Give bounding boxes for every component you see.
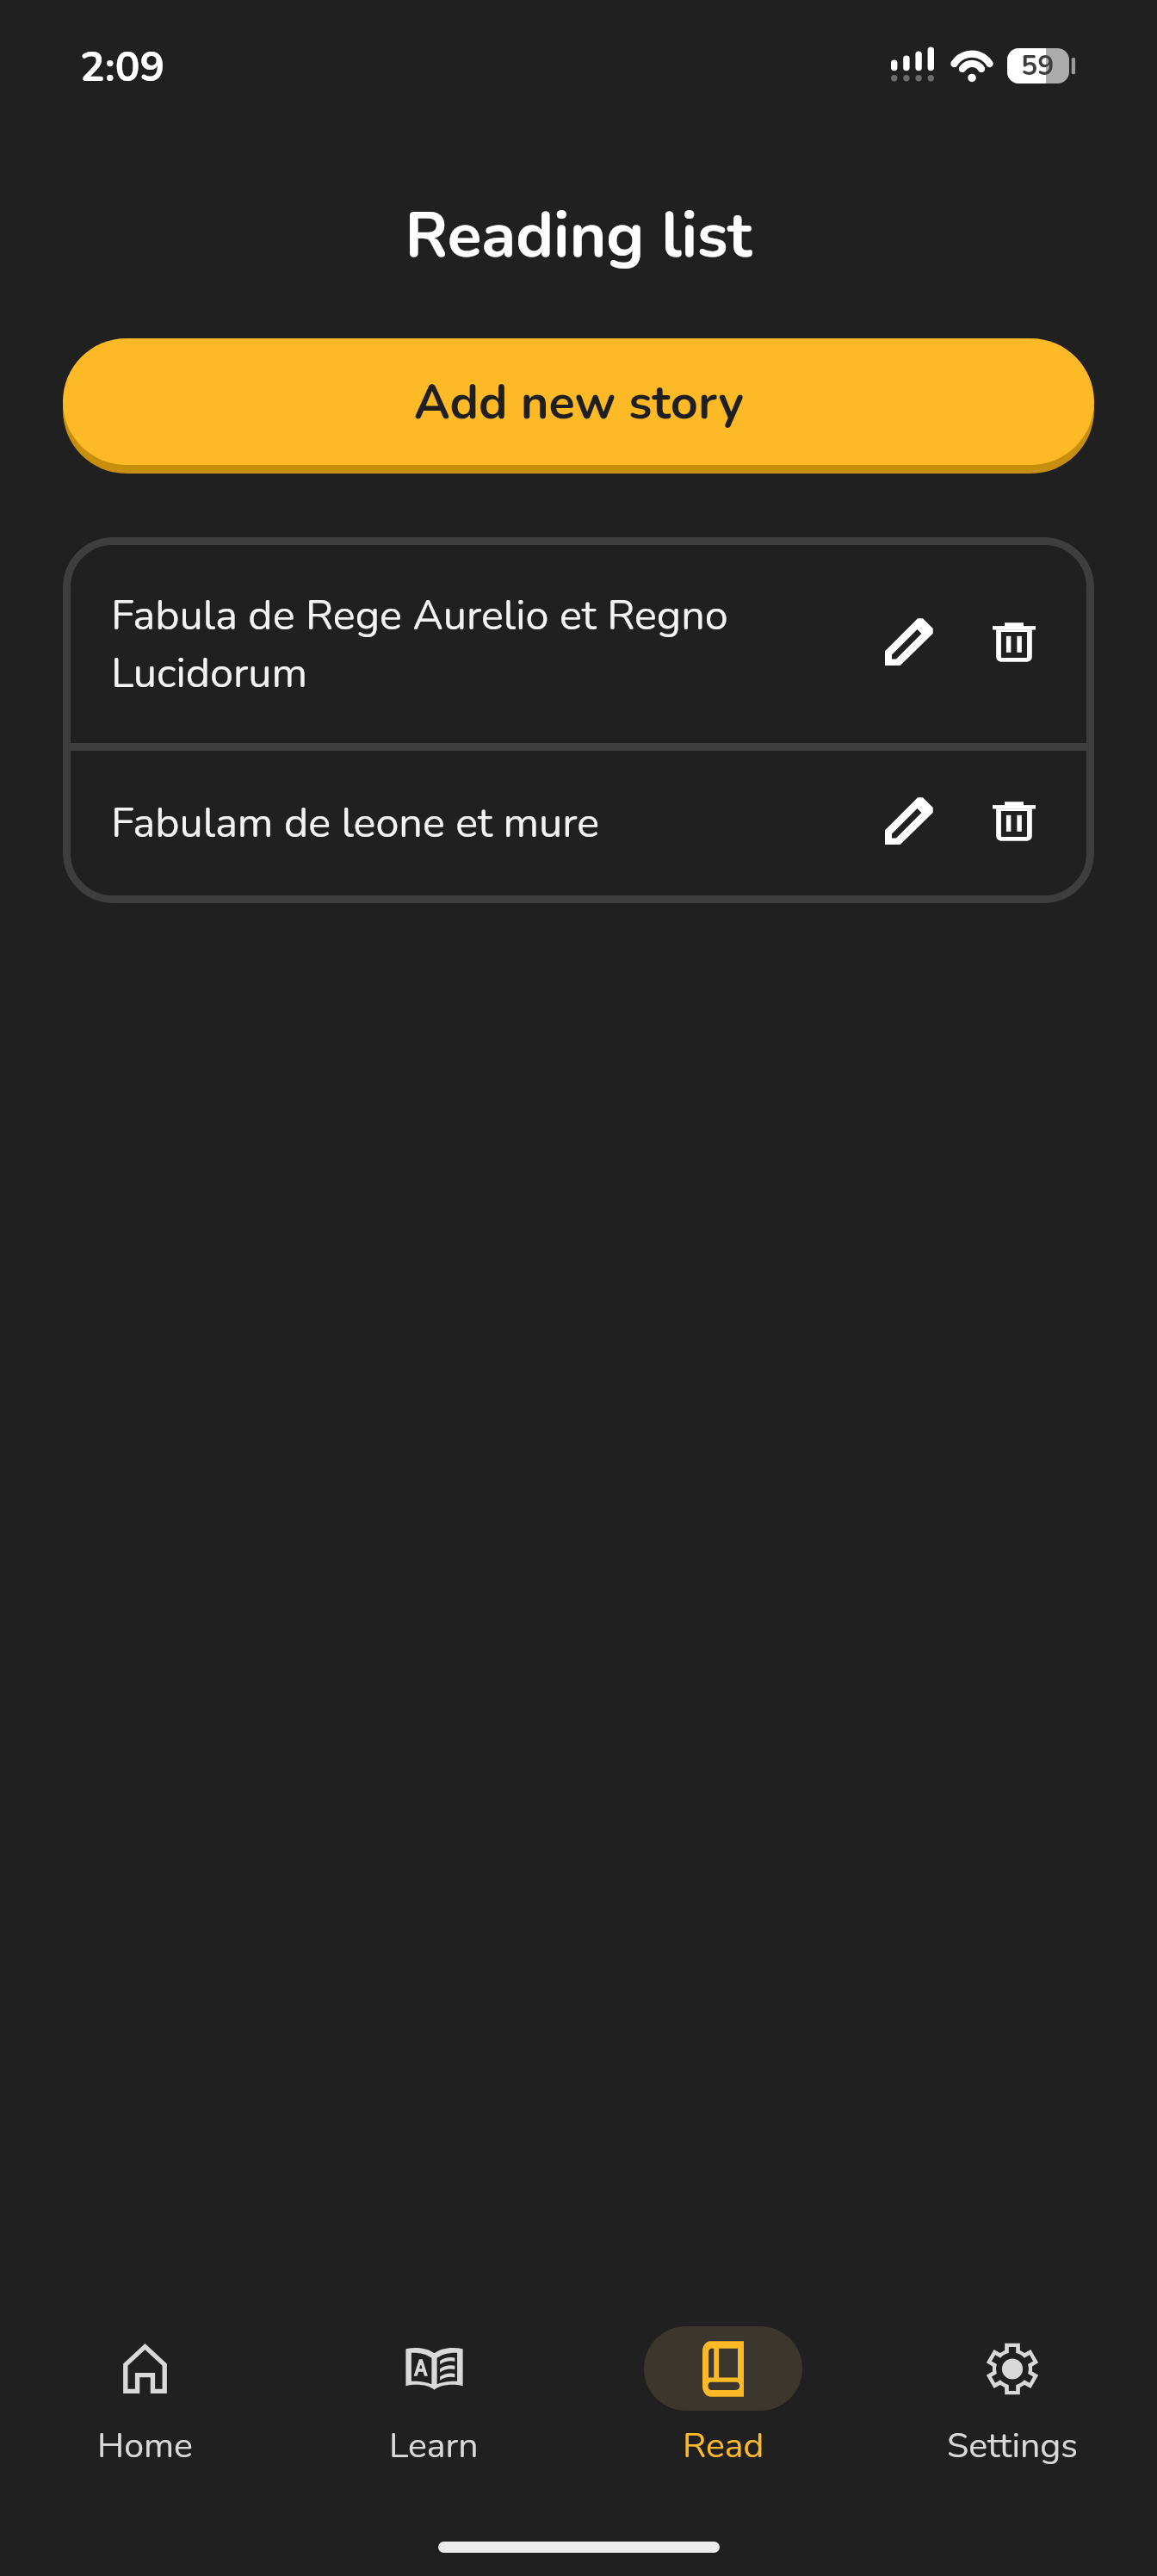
button[interactable]: Fabulam de leone et mure <box>111 751 873 895</box>
staticText: Read <box>683 2422 764 2470</box>
button[interactable]: Edit <box>873 604 947 678</box>
staticText: 59 <box>1021 47 1055 83</box>
staticText: Settings <box>947 2422 1078 2470</box>
staticText: Reading list <box>0 193 1157 279</box>
button[interactable]: Settings <box>868 2326 1157 2470</box>
staticText: Learn <box>389 2422 479 2470</box>
staticText: Add new story <box>414 369 744 435</box>
button[interactable]: Fabula de Rege Aurelio et Regno Lucidoru… <box>111 545 873 743</box>
button[interactable]: Add new story <box>63 338 1094 465</box>
button[interactable]: Learn <box>289 2326 578 2470</box>
button[interactable]: Edit <box>873 783 947 857</box>
staticText: Fabulam de leone et mure <box>111 795 600 851</box>
button[interactable]: Home <box>0 2326 289 2470</box>
button[interactable]: Read <box>578 2326 868 2470</box>
staticText: Fabula de Rege Aurelio et Regno Lucidoru… <box>111 587 838 702</box>
button[interactable]: Delete <box>977 783 1051 857</box>
staticText: 2:09 <box>80 39 165 95</box>
button[interactable]: Delete <box>977 604 1051 678</box>
staticText: Home <box>97 2422 193 2470</box>
